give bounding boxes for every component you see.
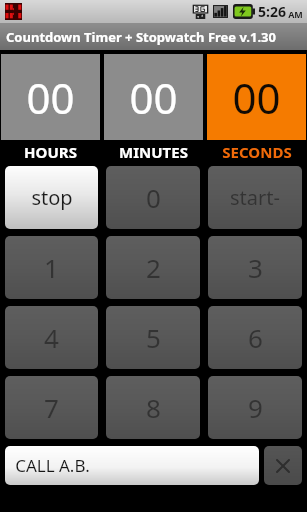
staticText: 00 (129, 69, 178, 126)
staticText: 5 (146, 320, 161, 355)
staticText: 8 (146, 390, 161, 425)
staticText: 00 (232, 69, 281, 126)
staticText: 6 (248, 320, 263, 355)
button[interactable]: start- (208, 166, 302, 229)
staticText: CALL A.B. (15, 454, 90, 477)
staticText: MINUTES (119, 142, 188, 162)
button[interactable]: 00 (1, 54, 100, 140)
staticText: 2 (146, 250, 161, 285)
button[interactable]: Clear (264, 446, 302, 485)
button[interactable]: 2 (106, 236, 200, 299)
button[interactable]: 9 (208, 376, 302, 439)
staticText: 3 (248, 250, 263, 285)
staticText: 4 (44, 320, 59, 355)
staticText: 0 (146, 180, 161, 215)
button[interactable]: 0 (106, 166, 200, 229)
staticText: stop (31, 184, 73, 211)
button[interactable]: 3 (208, 236, 302, 299)
staticText: Countdown Timer + Stopwatch Free v.1.30 (6, 28, 276, 46)
staticText: 9 (248, 390, 263, 425)
other: Timer notification (5, 3, 22, 20)
button[interactable]: stop (5, 166, 98, 229)
staticText: start- (230, 184, 280, 211)
staticText: 7 (44, 390, 59, 425)
button[interactable]: 7 (5, 376, 98, 439)
button[interactable]: 1 (5, 236, 98, 299)
button[interactable]: 00 (207, 54, 306, 140)
button[interactable]: 8 (106, 376, 200, 439)
button[interactable]: 5 (106, 306, 200, 369)
button[interactable]: 6 (208, 306, 302, 369)
staticText: HOURS (24, 142, 77, 162)
staticText: SECONDS (222, 142, 292, 162)
button[interactable]: 00 (104, 54, 203, 140)
staticText: AM (288, 8, 303, 20)
staticText: 5:26 (258, 2, 286, 21)
staticText: 1 (44, 250, 59, 285)
button[interactable]: CALL A.B. (5, 446, 259, 485)
button[interactable]: 4 (5, 306, 98, 369)
staticText: 00 (26, 69, 75, 126)
